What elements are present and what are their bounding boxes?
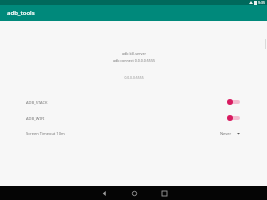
staticText: adb kill-server <box>122 51 146 56</box>
button[interactable]: ADB_WIFI <box>26 113 241 123</box>
other: Expand <box>236 131 241 136</box>
button[interactable]: ADB_STACK <box>26 97 241 107</box>
button[interactable]: Toggle <box>227 98 241 106</box>
staticText: Screen Timeout 10m <box>26 131 65 136</box>
staticText: adb_tools <box>7 9 35 17</box>
staticText: Never <box>220 131 232 136</box>
staticText: 9:35 <box>258 0 265 5</box>
button[interactable]: Recents <box>149 186 179 200</box>
button[interactable]: Screen Timeout 10m <box>26 128 241 138</box>
staticText: 0.0.0.0:5555 <box>124 75 144 80</box>
staticText: adb connect 0.0.0.0:5555 <box>113 58 155 63</box>
staticText: ADB_STACK <box>26 100 48 105</box>
staticText: ADB_WIFI <box>26 116 45 121</box>
button[interactable]: Back <box>89 186 119 200</box>
button[interactable]: Home <box>119 186 149 200</box>
button[interactable]: Toggle <box>227 114 241 122</box>
